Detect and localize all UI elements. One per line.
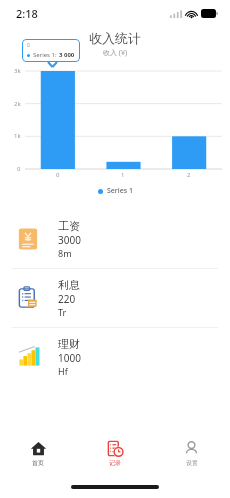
staticText: 设置	[186, 459, 198, 467]
staticText: 1k	[14, 132, 21, 140]
button[interactable]: 工资	[0, 210, 230, 268]
staticText: 收入 (¥)	[103, 48, 128, 58]
staticText: 收入统计	[89, 30, 141, 46]
button[interactable]: 利息	[0, 269, 230, 327]
staticText: 1	[121, 171, 125, 179]
staticText: 2k	[14, 100, 21, 108]
staticText: 2	[187, 171, 191, 179]
staticText: 8m	[58, 247, 72, 259]
other: 设置	[183, 440, 200, 457]
staticText: 记录	[109, 459, 121, 467]
staticText: Tr	[58, 306, 67, 318]
staticText: Series 1:	[33, 51, 59, 59]
staticText: 0	[27, 42, 30, 49]
button[interactable]: 首页	[0, 430, 76, 476]
other: 首页	[30, 440, 47, 457]
staticText: 3k	[14, 67, 21, 75]
other: 记录	[106, 440, 123, 457]
button[interactable]: 设置	[153, 430, 230, 476]
staticText: Series 1	[107, 186, 133, 196]
staticText: 3000	[58, 233, 81, 247]
staticText: 0	[56, 171, 60, 179]
button[interactable]: 记录	[76, 430, 153, 476]
staticText: 理财	[58, 337, 80, 351]
staticText: 3 000	[59, 51, 75, 59]
staticText: 首页	[32, 459, 44, 467]
staticText: 0	[17, 165, 21, 173]
staticText: 220	[58, 292, 76, 306]
staticText: 1000	[58, 351, 81, 365]
staticText: Hf	[58, 365, 68, 377]
staticText: 利息	[58, 278, 80, 292]
button[interactable]: 理财	[0, 328, 230, 386]
staticText: 工资	[58, 219, 80, 233]
staticText: 2:18	[16, 6, 38, 21]
